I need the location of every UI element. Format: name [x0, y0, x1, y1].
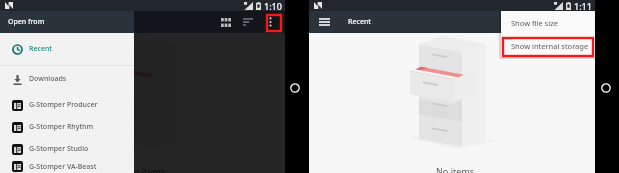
staticText: G-Stomper Studio [29, 144, 89, 154]
button[interactable]: Sort [237, 11, 259, 33]
button[interactable]: More options [259, 11, 281, 33]
staticText: 1:10 [264, 0, 282, 11]
button[interactable]: G-Stomper Rhythm [0, 116, 134, 138]
button[interactable]: Show internal storage [501, 34, 595, 57]
staticText: G-Stomper VA-Beast [29, 162, 97, 172]
staticText: Recent [348, 17, 371, 27]
button[interactable]: Downloads [0, 68, 134, 90]
button[interactable]: Recent [0, 38, 134, 60]
staticText: Downloads [29, 74, 67, 84]
staticText: 1:11 [574, 0, 592, 11]
button[interactable]: G-Stomper VA-Beast [0, 160, 134, 173]
staticText: Show internal storage [511, 41, 589, 51]
staticText: G-Stomper Producer [29, 100, 98, 110]
button[interactable]: G-Stomper Producer [0, 94, 134, 116]
button[interactable]: Grid view [215, 11, 237, 33]
staticText: Show file size [511, 18, 558, 28]
staticText: G-Stomper Rhythm [29, 122, 94, 132]
button[interactable]: Open navigation drawer [313, 11, 335, 33]
staticText: No items [436, 165, 474, 173]
staticText: Recent [29, 44, 52, 54]
button[interactable]: Show file size [501, 11, 595, 34]
staticText: No items [127, 165, 165, 173]
button[interactable]: G-Stomper Studio [0, 138, 134, 160]
staticText: Open from [8, 17, 45, 27]
